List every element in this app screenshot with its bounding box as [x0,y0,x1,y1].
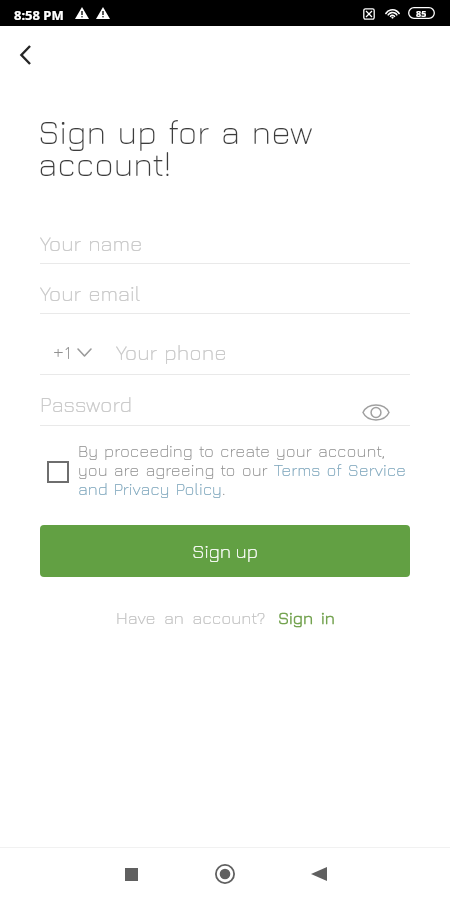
button[interactable]: +1 [53,339,91,365]
staticText: Sign in [278,608,335,628]
staticText: Your phone [116,340,227,365]
button[interactable]: Show password [358,394,394,430]
button[interactable]: Back [272,848,366,900]
button[interactable]: Home [178,848,272,900]
button[interactable]: Have an account? [114,606,337,630]
button[interactable]: Sign up [40,525,410,577]
button[interactable]: By proceeding to create your account, yo… [78,441,411,499]
staticText: Sign up for a new account! [38,112,313,183]
staticText: Have an account? [116,608,266,628]
button[interactable]: Your email [40,280,410,306]
staticText: Sign up [192,540,259,562]
staticText: Your email [40,281,141,306]
staticText: Your name [40,231,143,256]
button[interactable]: Password [40,391,410,417]
staticText: Password [40,392,133,417]
button[interactable]: Recent apps [84,848,178,900]
staticText: 8:58 PM [14,6,64,24]
button[interactable]: Accept terms [48,462,68,482]
staticText: 85 [416,7,427,19]
button[interactable]: Back [4,34,46,76]
staticText: By proceeding to create your account, yo… [78,441,407,499]
button[interactable]: Your name [40,230,410,256]
staticText: +1 [53,340,71,364]
